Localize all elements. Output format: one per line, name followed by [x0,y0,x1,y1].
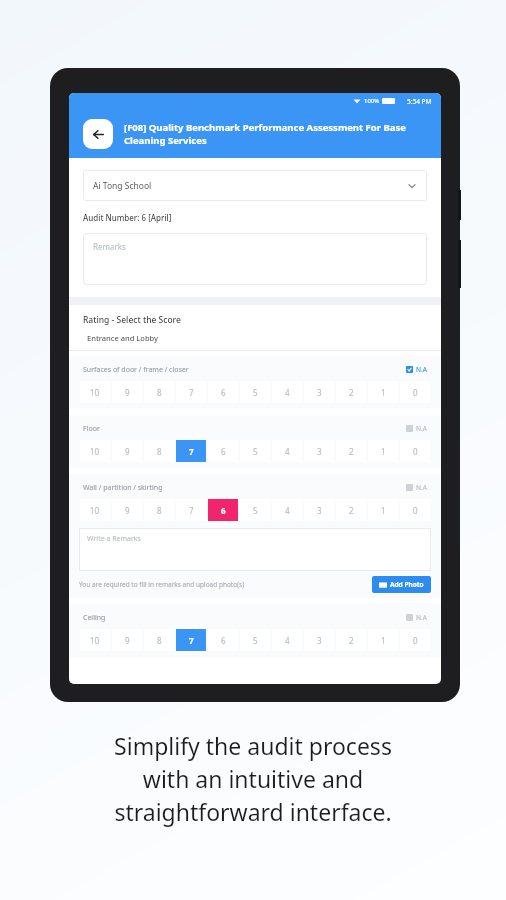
button[interactable]: 8 [144,440,174,462]
button[interactable]: 1 [368,629,398,651]
button[interactable]: 3 [304,499,334,521]
staticText: 5 [253,446,258,457]
staticText: 2 [349,446,354,457]
button[interactable]: 6 [208,440,238,462]
button[interactable]: 4 [272,629,302,651]
staticText: 6 [221,446,226,457]
staticText: 0 [413,446,418,457]
staticText: 7 [189,635,194,646]
button[interactable]: 0 [400,440,430,462]
staticText: 10 [90,446,100,457]
staticText: Write a Remarks [87,534,141,544]
staticText: Ai Tong School [93,180,152,192]
button[interactable]: 2 [336,381,366,403]
button[interactable]: 7 [176,381,206,403]
button[interactable]: 8 [144,381,174,403]
button[interactable]: 9 [112,629,142,651]
button[interactable]: 9 [112,499,142,521]
button[interactable]: 5 [240,499,270,521]
button[interactable]: 10 [80,381,110,403]
button[interactable]: N.A [404,422,429,435]
staticText: 4 [285,446,290,457]
staticText: 4 [285,505,290,516]
button[interactable]: 7 [176,629,206,651]
staticText: Simplify the audit process with an intui… [114,730,392,828]
staticText: Rating - Select the Score [83,314,181,326]
staticText: 2 [349,505,354,516]
button[interactable]: 1 [368,381,398,403]
button[interactable]: 4 [272,440,302,462]
button[interactable]: 8 [144,499,174,521]
button[interactable]: 0 [400,499,430,521]
staticText: You are required to fill in remarks and … [79,580,245,589]
button[interactable]: 0 [400,629,430,651]
staticText: 5:54 PM [407,97,432,106]
staticText: 10 [90,387,100,398]
button[interactable]: 9 [112,440,142,462]
button[interactable]: 1 [368,499,398,521]
staticText: 7 [189,387,194,398]
button[interactable]: 10 [80,499,110,521]
staticText: 9 [125,446,130,457]
button[interactable]: 7 [176,440,206,462]
button[interactable]: 5 [240,381,270,403]
button[interactable]: N.A [404,611,429,624]
button[interactable]: 10 [80,629,110,651]
button[interactable]: 10 [80,440,110,462]
button[interactable]: 5 [240,629,270,651]
staticText: Add Photo [390,580,424,589]
button[interactable]: 0 [400,381,430,403]
staticText: 0 [413,505,418,516]
button[interactable]: 3 [304,381,334,403]
button[interactable]: N.A [404,363,429,376]
button[interactable]: 2 [336,629,366,651]
button[interactable]: Remarks [83,233,427,285]
button[interactable]: 6 [208,629,238,651]
staticText: 1 [381,446,386,457]
staticText: Remarks [93,241,126,252]
staticText: 10 [90,505,100,516]
staticText: Entrance and Lobby [87,333,158,343]
staticText: [F08] Quality Benchmark Performance Asse… [124,121,429,147]
button[interactable]: 4 [272,499,302,521]
button[interactable]: 6 [208,499,238,521]
staticText: 8 [157,505,162,516]
staticText: N.A [416,424,427,433]
button[interactable]: 2 [336,499,366,521]
button[interactable]: Add Photo [372,576,431,593]
button[interactable]: 3 [304,629,334,651]
button[interactable]: 7 [176,499,206,521]
button[interactable]: N.A [404,481,429,494]
staticText: N.A [416,613,427,622]
button[interactable]: 1 [368,440,398,462]
staticText: 4 [285,387,290,398]
staticText: 0 [413,635,418,646]
button[interactable]: 5 [240,440,270,462]
button[interactable]: 8 [144,629,174,651]
staticText: Surfaces of door / frame / closer [83,365,189,375]
button[interactable]: 3 [304,440,334,462]
button[interactable]: 2 [336,440,366,462]
staticText: 7 [189,505,194,516]
staticText: Floor [83,424,100,434]
staticText: 2 [349,635,354,646]
staticText: 6 [221,387,226,398]
staticText: 1 [381,387,386,398]
button[interactable]: 9 [112,381,142,403]
staticText: Wall / partition / skirting [83,483,163,493]
staticText: 3 [317,505,322,516]
staticText: 6 [221,505,226,516]
staticText: 1 [381,505,386,516]
staticText: 6 [221,635,226,646]
button[interactable]: Write a Remarks [79,528,431,571]
button[interactable]: Back [83,119,113,149]
button[interactable]: Ai Tong School [83,170,427,201]
staticText: 8 [157,387,162,398]
staticText: 100% [364,97,380,105]
staticText: 4 [285,635,290,646]
button[interactable]: 6 [208,381,238,403]
staticText: 2 [349,387,354,398]
staticText: Audit Number: 6 [April] [83,212,172,223]
staticText: 3 [317,635,322,646]
button[interactable]: 4 [272,381,302,403]
